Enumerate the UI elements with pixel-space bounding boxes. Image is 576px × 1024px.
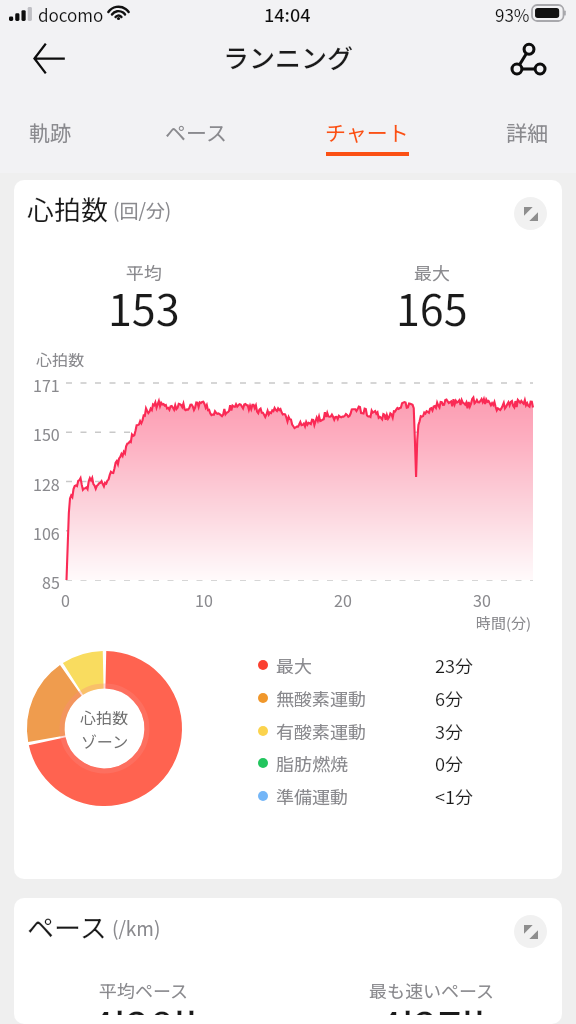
staticText: <1分 <box>435 783 473 809</box>
staticText: 無酸素運動 <box>276 685 366 711</box>
staticText: 0分 <box>435 750 463 776</box>
staticText: 128 <box>33 472 60 495</box>
staticText: 165 <box>396 276 468 330</box>
staticText: 0 <box>61 588 70 611</box>
staticText: 171 <box>33 373 60 396</box>
staticText: ペース <box>27 907 107 946</box>
staticText: (回/分) <box>113 196 172 224</box>
staticText: 最も速いペース <box>369 977 495 1003</box>
button[interactable]: Expand <box>514 915 547 948</box>
staticText: 心拍数 <box>80 705 129 728</box>
staticText: 20 <box>334 588 352 611</box>
staticText: 平均ペース <box>99 977 189 1003</box>
staticText: 106 <box>33 521 60 544</box>
staticText: 3分 <box>435 718 463 744</box>
staticText: ゾーン <box>81 729 129 752</box>
staticText: 平均 <box>126 259 162 285</box>
button[interactable]: 準備運動 <box>258 783 528 809</box>
staticText: 153 <box>108 276 180 330</box>
button[interactable]: Back <box>16 34 80 100</box>
staticText: 最大 <box>414 259 450 285</box>
button[interactable]: 最大 <box>258 652 528 678</box>
staticText: 4'28'' <box>90 994 198 1015</box>
button[interactable]: 詳細 <box>503 100 551 173</box>
staticText: チャート <box>325 117 409 147</box>
staticText: 23分 <box>435 652 473 678</box>
staticText: 有酸素運動 <box>276 718 366 744</box>
staticText: ランニング <box>223 38 354 76</box>
staticText: 30 <box>473 588 491 611</box>
staticText: 85 <box>42 570 60 593</box>
button[interactable]: Share <box>496 34 560 100</box>
staticText: 詳細 <box>506 117 548 147</box>
staticText: 準備運動 <box>276 783 348 809</box>
staticText: 93% <box>495 2 530 27</box>
staticText: 14:04 <box>264 1 311 27</box>
button[interactable]: 無酸素運動 <box>258 685 528 711</box>
staticText: 4'27'' <box>378 994 486 1015</box>
button[interactable]: 有酸素運動 <box>258 718 528 744</box>
staticText: 心拍数 <box>36 347 85 370</box>
staticText: (/km) <box>112 914 161 942</box>
staticText: 軌跡 <box>29 117 71 147</box>
button[interactable]: Expand <box>514 197 547 230</box>
staticText: ペース <box>165 117 227 147</box>
staticText: docomo <box>38 2 104 27</box>
button[interactable]: 軌跡 <box>27 100 73 173</box>
staticText: 心拍数 <box>27 189 108 228</box>
button[interactable]: チャート <box>323 100 411 173</box>
staticText: 脂肪燃焼 <box>276 750 348 776</box>
staticText: 150 <box>33 422 60 445</box>
staticText: 6分 <box>435 685 463 711</box>
staticText: 10 <box>195 588 213 611</box>
button[interactable]: ペース <box>162 100 230 173</box>
staticText: 最大 <box>276 652 312 678</box>
staticText: 時間(分) <box>476 612 532 634</box>
button[interactable]: 脂肪燃焼 <box>258 750 528 776</box>
